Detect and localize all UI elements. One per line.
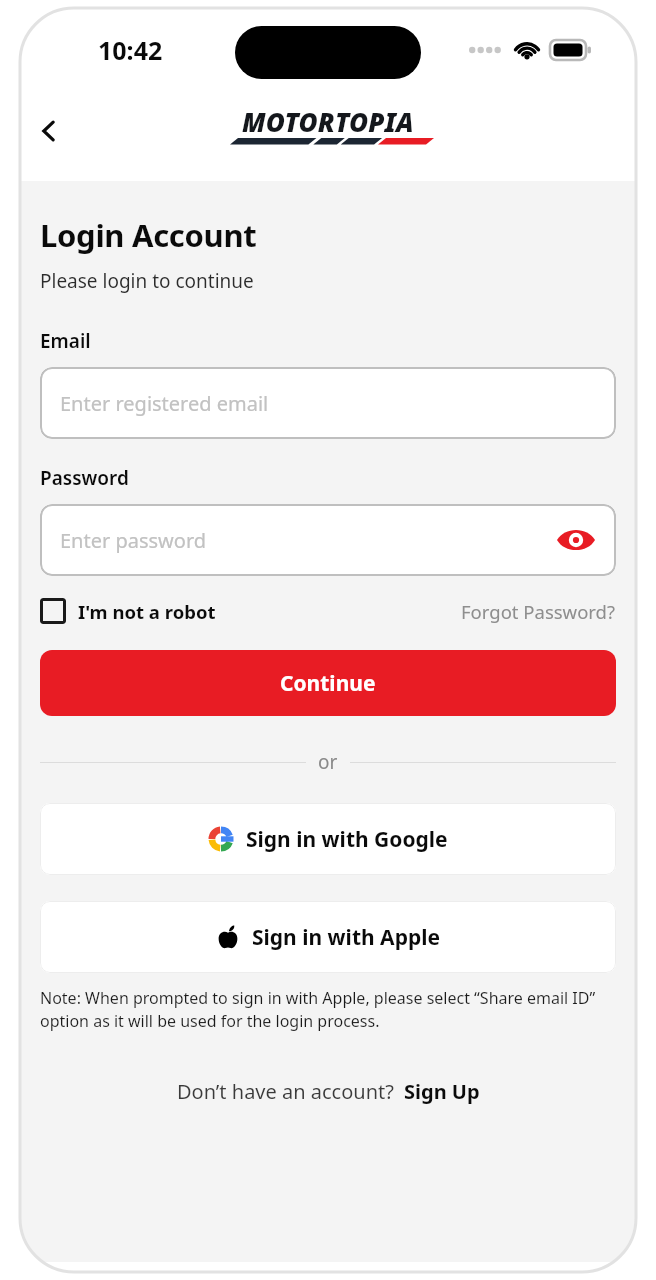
staticText: Password	[40, 465, 129, 491]
staticText: Sign in with Apple	[252, 923, 440, 952]
button[interactable]: Continue	[40, 650, 616, 716]
button[interactable]: Enter registered email	[40, 367, 616, 439]
staticText: Sign in with Google	[246, 825, 448, 854]
button[interactable]: Sign in with Apple	[40, 901, 616, 973]
staticText: Forgot Password?	[461, 599, 616, 624]
staticText: Continue	[280, 669, 376, 698]
staticText: Please login to continue	[40, 268, 254, 294]
staticText: Don’t have an account?	[177, 1078, 394, 1105]
staticText: 10:42	[98, 33, 163, 67]
staticText: I'm not a robot	[78, 599, 216, 624]
staticText: Email	[40, 328, 91, 354]
button[interactable]: Sign in with Google	[40, 803, 616, 875]
button[interactable]: Show password	[554, 518, 598, 562]
staticText: Note: When prompted to sign in with Appl…	[40, 987, 616, 1032]
staticText: Enter registered email	[60, 390, 269, 417]
staticText: or	[318, 749, 338, 775]
button[interactable]: Sign Up	[404, 1078, 480, 1105]
staticText: Sign Up	[404, 1078, 480, 1105]
button[interactable]: I'm not a robot	[40, 598, 216, 624]
staticText: Login Account	[40, 214, 257, 256]
staticText: Enter password	[60, 527, 207, 554]
button[interactable]: Forgot Password?	[461, 599, 616, 624]
staticText: MOTORTOPIA	[242, 104, 414, 139]
button[interactable]: Back	[26, 108, 72, 154]
button[interactable]: Enter password	[40, 504, 616, 576]
